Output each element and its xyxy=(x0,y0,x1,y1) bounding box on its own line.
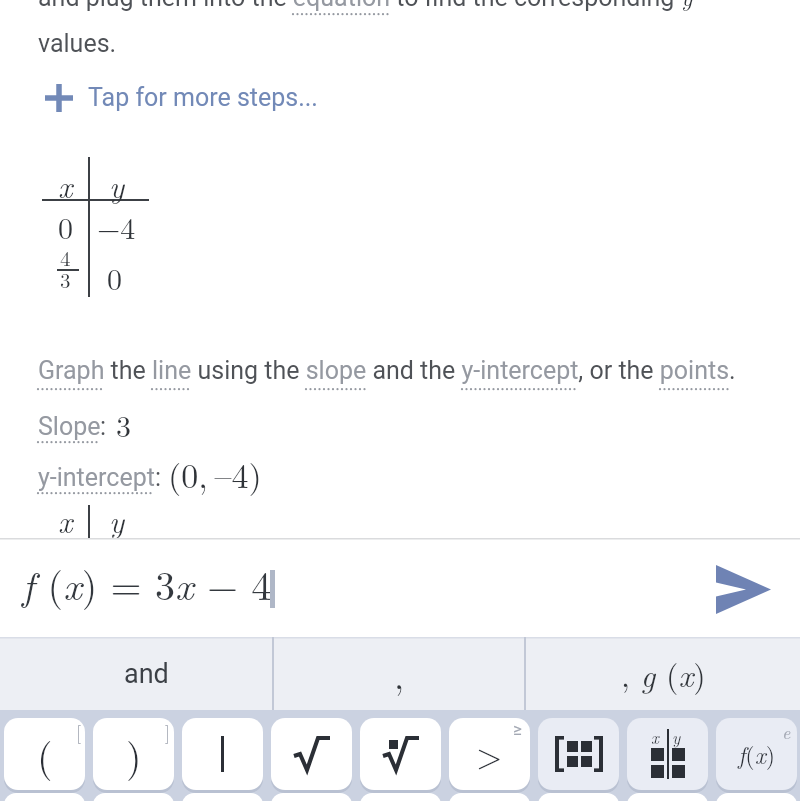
button[interactable]: Tap for more steps... xyxy=(44,81,318,114)
staticText: : xyxy=(100,412,107,441)
staticText: > xyxy=(476,730,503,778)
staticText: 3 xyxy=(116,403,131,446)
button[interactable] xyxy=(182,718,263,790)
staticText: x xyxy=(651,725,659,749)
button[interactable]: ) xyxy=(93,718,174,790)
staticText: y-intercept xyxy=(38,463,155,492)
staticText: and xyxy=(124,658,169,690)
staticText: 0 xyxy=(58,205,73,248)
button[interactable] xyxy=(716,565,771,614)
button[interactable]: > xyxy=(449,718,530,790)
staticText: and plug them into the equation to find … xyxy=(38,0,693,13)
staticText: , g (x) xyxy=(621,651,706,696)
button[interactable]: f (x) = 3x − 4 xyxy=(0,538,800,637)
staticText: −4 xyxy=(97,205,136,248)
staticText: y xyxy=(109,163,125,207)
button[interactable]: , g (x) xyxy=(526,637,800,710)
staticText: f (x) = 3x − 4 xyxy=(22,555,272,612)
button[interactable] xyxy=(360,718,441,790)
staticText: 4 xyxy=(60,242,71,272)
staticText: 0 xyxy=(107,256,122,299)
staticText: Graph the line using the slope and the y… xyxy=(38,356,736,385)
staticText: : xyxy=(155,463,162,492)
button[interactable] xyxy=(538,718,619,790)
staticText: x xyxy=(58,498,73,542)
button[interactable]: ( xyxy=(4,718,85,790)
staticText: Tap for more steps... xyxy=(88,83,318,112)
staticText: (0, –4) xyxy=(168,450,262,498)
staticText: y xyxy=(109,498,125,542)
staticText: 3 xyxy=(60,264,71,294)
staticText: e xyxy=(782,719,791,744)
staticText: y xyxy=(672,725,681,749)
button[interactable]: and xyxy=(10,637,282,710)
staticText: f(x) xyxy=(738,737,776,771)
staticText: values. xyxy=(38,29,117,58)
button[interactable]: , xyxy=(274,637,524,710)
staticText: x xyxy=(58,163,73,207)
staticText: ) xyxy=(126,726,142,783)
staticText: ] xyxy=(165,719,171,745)
staticText: , xyxy=(394,648,405,699)
staticText: [ xyxy=(76,719,82,745)
staticText: ≥ xyxy=(513,719,522,739)
staticText: ( xyxy=(37,726,53,783)
button[interactable]: x xyxy=(627,718,708,790)
staticText: Slope xyxy=(38,412,101,441)
button[interactable] xyxy=(271,718,352,790)
button[interactable]: f(x) xyxy=(716,718,797,790)
